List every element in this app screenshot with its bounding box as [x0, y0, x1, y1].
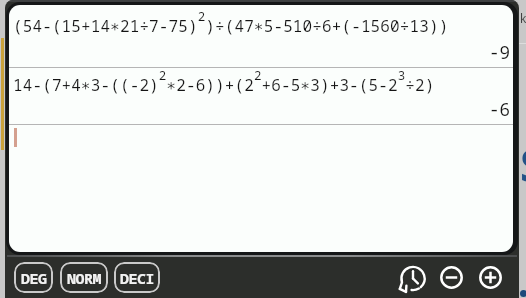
staticText: DEG	[21, 268, 47, 288]
staticText: (54-(15+14∗21÷7-75)2)÷(47∗5-510÷6+(-1560…	[13, 8, 449, 36]
staticText: 14-(7+4∗3-((-2)2∗2-6))+(22+6-5∗3)+3-(5-2…	[13, 67, 435, 95]
button[interactable]	[440, 266, 463, 289]
staticText: NORM	[67, 268, 102, 288]
staticText: -6	[489, 97, 510, 121]
button[interactable]	[400, 265, 426, 291]
button[interactable]	[479, 266, 502, 289]
staticText: kr	[520, 10, 526, 26]
staticText: S	[520, 135, 526, 195]
staticText: DECI	[120, 268, 155, 288]
button[interactable]: (54-(15+14∗21÷7-75)2)÷(47∗5-510÷6+(-1560…	[9, 5, 513, 252]
button[interactable]: NORM	[60, 262, 108, 293]
button[interactable]: DEG	[14, 262, 53, 293]
staticText: -9	[489, 40, 510, 64]
button[interactable]: DECI	[114, 262, 160, 293]
